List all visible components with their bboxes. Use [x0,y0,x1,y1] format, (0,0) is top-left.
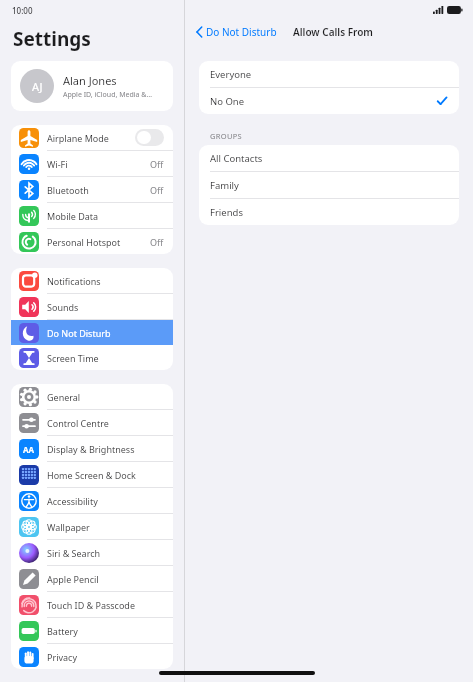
staticText: All Contacts [210,152,448,165]
button[interactable]: Bluetooth [11,177,173,202]
staticText: General [47,391,164,403]
staticText: GROUPS [210,131,242,141]
button[interactable]: Airplane Mode toggle [135,129,164,146]
staticText: Display & Brightness [47,443,164,455]
button[interactable]: Accessibility [11,488,173,513]
button[interactable]: Touch ID & Passcode [11,592,173,617]
button[interactable]: Control Centre [11,410,173,435]
staticText: Do Not Disturb [47,327,164,339]
button[interactable]: Wallpaper [11,514,173,539]
staticText: Off [150,236,164,248]
button[interactable]: Home Screen & Dock [11,462,173,487]
button[interactable]: Mobile Data [11,203,173,228]
staticText: Accessibility [47,495,164,507]
staticText: Alan Jones [63,73,117,88]
button[interactable]: Sounds [11,294,173,319]
staticText: Bluetooth [47,184,150,196]
button[interactable]: Privacy [11,644,173,669]
button[interactable]: Notifications [11,268,173,293]
staticText: Personal Hotspot [47,236,150,248]
staticText: Allow Calls From [293,25,373,39]
staticText: Off [150,158,164,170]
staticText: Airplane Mode [47,132,135,144]
button[interactable]: Battery [11,618,173,643]
staticText: Wallpaper [47,521,164,533]
button[interactable]: General [11,384,173,409]
button[interactable]: Do Not Disturb [11,320,173,345]
button[interactable]: Screen Time [11,345,173,370]
button[interactable]: Do Not Disturb [193,23,280,41]
button[interactable]: Personal Hotspot [11,229,173,254]
staticText: 10:00 [12,5,33,16]
staticText: No One [210,95,436,108]
staticText: Wi-Fi [47,158,150,170]
button[interactable]: Friends [199,199,459,225]
staticText: Mobile Data [47,210,164,222]
staticText: Do Not Disturb [206,25,277,39]
button[interactable]: All Contacts [199,145,459,171]
staticText: Friends [210,206,448,219]
staticText: Off [150,184,164,196]
staticText: Everyone [210,68,448,81]
staticText: Touch ID & Passcode [47,599,164,611]
staticText: AA [23,444,35,455]
button[interactable]: Family [199,172,459,198]
button[interactable]: AJ [11,61,173,111]
staticText: Control Centre [47,417,164,429]
staticText: Notifications [47,275,164,287]
staticText: Apple ID, iCloud, Media &… [63,90,152,100]
staticText: Privacy [47,651,164,663]
staticText: Settings [13,26,91,52]
staticText: Battery [47,625,164,637]
button[interactable]: Wi-Fi [11,151,173,176]
button[interactable]: Airplane Mode [11,125,173,150]
staticText: AJ [32,79,43,94]
staticText: Home Screen & Dock [47,469,164,481]
staticText: Siri & Search [47,547,164,559]
button[interactable]: Siri & Search [11,540,173,565]
button[interactable]: No One [199,88,459,114]
staticText: Apple Pencil [47,573,164,585]
staticText: Sounds [47,301,164,313]
button[interactable]: Everyone [199,61,459,87]
staticText: Screen Time [47,352,164,364]
staticText: Family [210,179,448,192]
button[interactable]: AA [11,436,173,461]
button[interactable]: Apple Pencil [11,566,173,591]
